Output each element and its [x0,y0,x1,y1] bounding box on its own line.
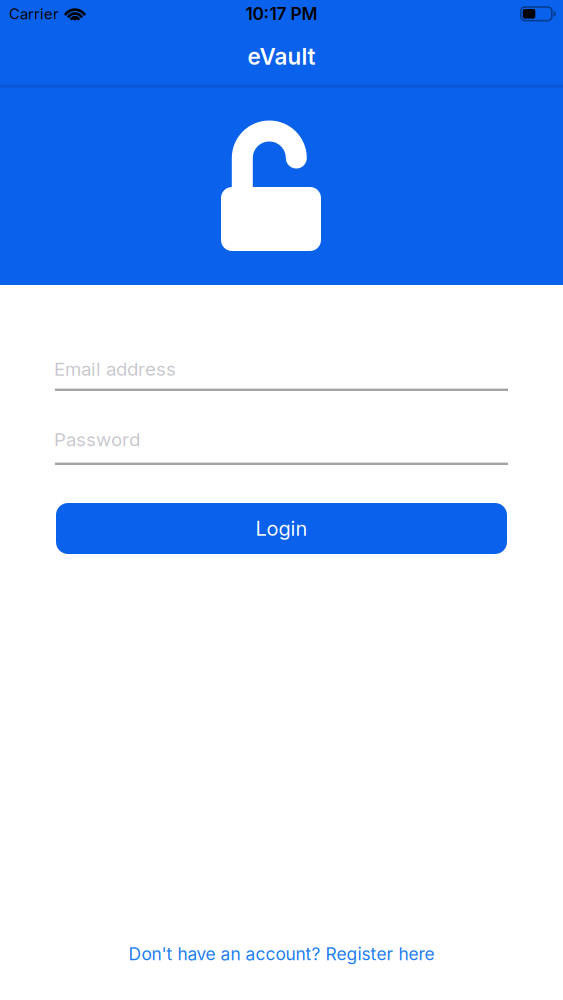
staticText: Email address [54,358,176,380]
textField[interactable]: Password [55,426,508,465]
staticText: Don't have an account? Register here [128,944,434,964]
staticText: Password [54,428,140,450]
button[interactable]: Don't have an account? Register here [128,944,434,964]
button[interactable]: Login [56,503,507,554]
staticText: Login [255,517,307,540]
staticText: 10:17 PM [245,4,317,24]
staticText: eVault [247,43,315,70]
staticText: Carrier [9,5,59,22]
textField[interactable]: Email address [55,352,508,391]
